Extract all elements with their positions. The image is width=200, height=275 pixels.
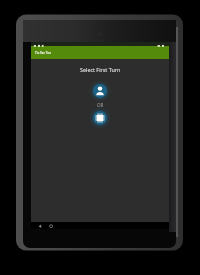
button[interactable]: Computer plays first <box>93 111 107 125</box>
staticText: Select First Turn <box>80 66 121 73</box>
button[interactable]: Human plays first <box>93 84 107 98</box>
staticText: OR <box>97 102 104 108</box>
staticText: Tic Tac Toe <box>35 51 52 55</box>
